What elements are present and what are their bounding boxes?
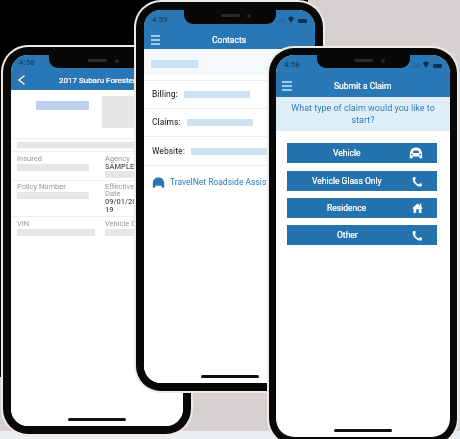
button[interactable]: Website:: [144, 141, 315, 161]
button[interactable]: Billing:: [144, 84, 315, 104]
staticText: Date: [105, 189, 121, 198]
staticText: Website:: [152, 146, 185, 156]
staticText: 4:58: [284, 60, 300, 69]
staticText: 09/01/20 19: [105, 197, 137, 214]
staticText: SAMPLE A: [105, 162, 142, 171]
button[interactable]: Back: [11, 70, 31, 90]
staticText: Residence: [327, 203, 367, 213]
button[interactable]: Claims:: [144, 112, 315, 132]
button[interactable]: TravelNet Roadside Assist: [144, 172, 315, 192]
staticText: 4:59: [152, 15, 168, 24]
staticText: Vehicle: [333, 148, 361, 158]
staticText: Contacts: [212, 35, 247, 45]
button[interactable]: Residence: [287, 198, 437, 218]
staticText: TravelNet Roadside Assist: [170, 177, 270, 187]
button[interactable]: Other: [287, 225, 437, 245]
button[interactable]: Vehicle Glass Only: [287, 171, 437, 191]
staticText: Claims:: [152, 117, 181, 127]
staticText: Other: [337, 230, 358, 240]
staticText: VIN: [17, 219, 30, 228]
staticText: Agency: [105, 154, 130, 163]
staticText: Insured: [17, 154, 42, 163]
staticText: Billing:: [152, 89, 178, 99]
staticText: What type of claim would you like to sta…: [281, 103, 445, 125]
staticText: Vehicle D: [105, 219, 137, 228]
button[interactable]: Vehicle: [287, 143, 437, 163]
button[interactable]: Menu: [276, 74, 298, 97]
staticText: 4:58: [19, 58, 35, 67]
button[interactable]: Menu: [144, 29, 166, 49]
staticText: Effective: [105, 182, 135, 191]
staticText: Vehicle Glass Only: [312, 176, 382, 186]
staticText: Policy Number: [17, 182, 66, 191]
staticText: Submit a Claim: [334, 81, 392, 91]
staticText: 2017 Subaru Forester: [59, 76, 136, 85]
